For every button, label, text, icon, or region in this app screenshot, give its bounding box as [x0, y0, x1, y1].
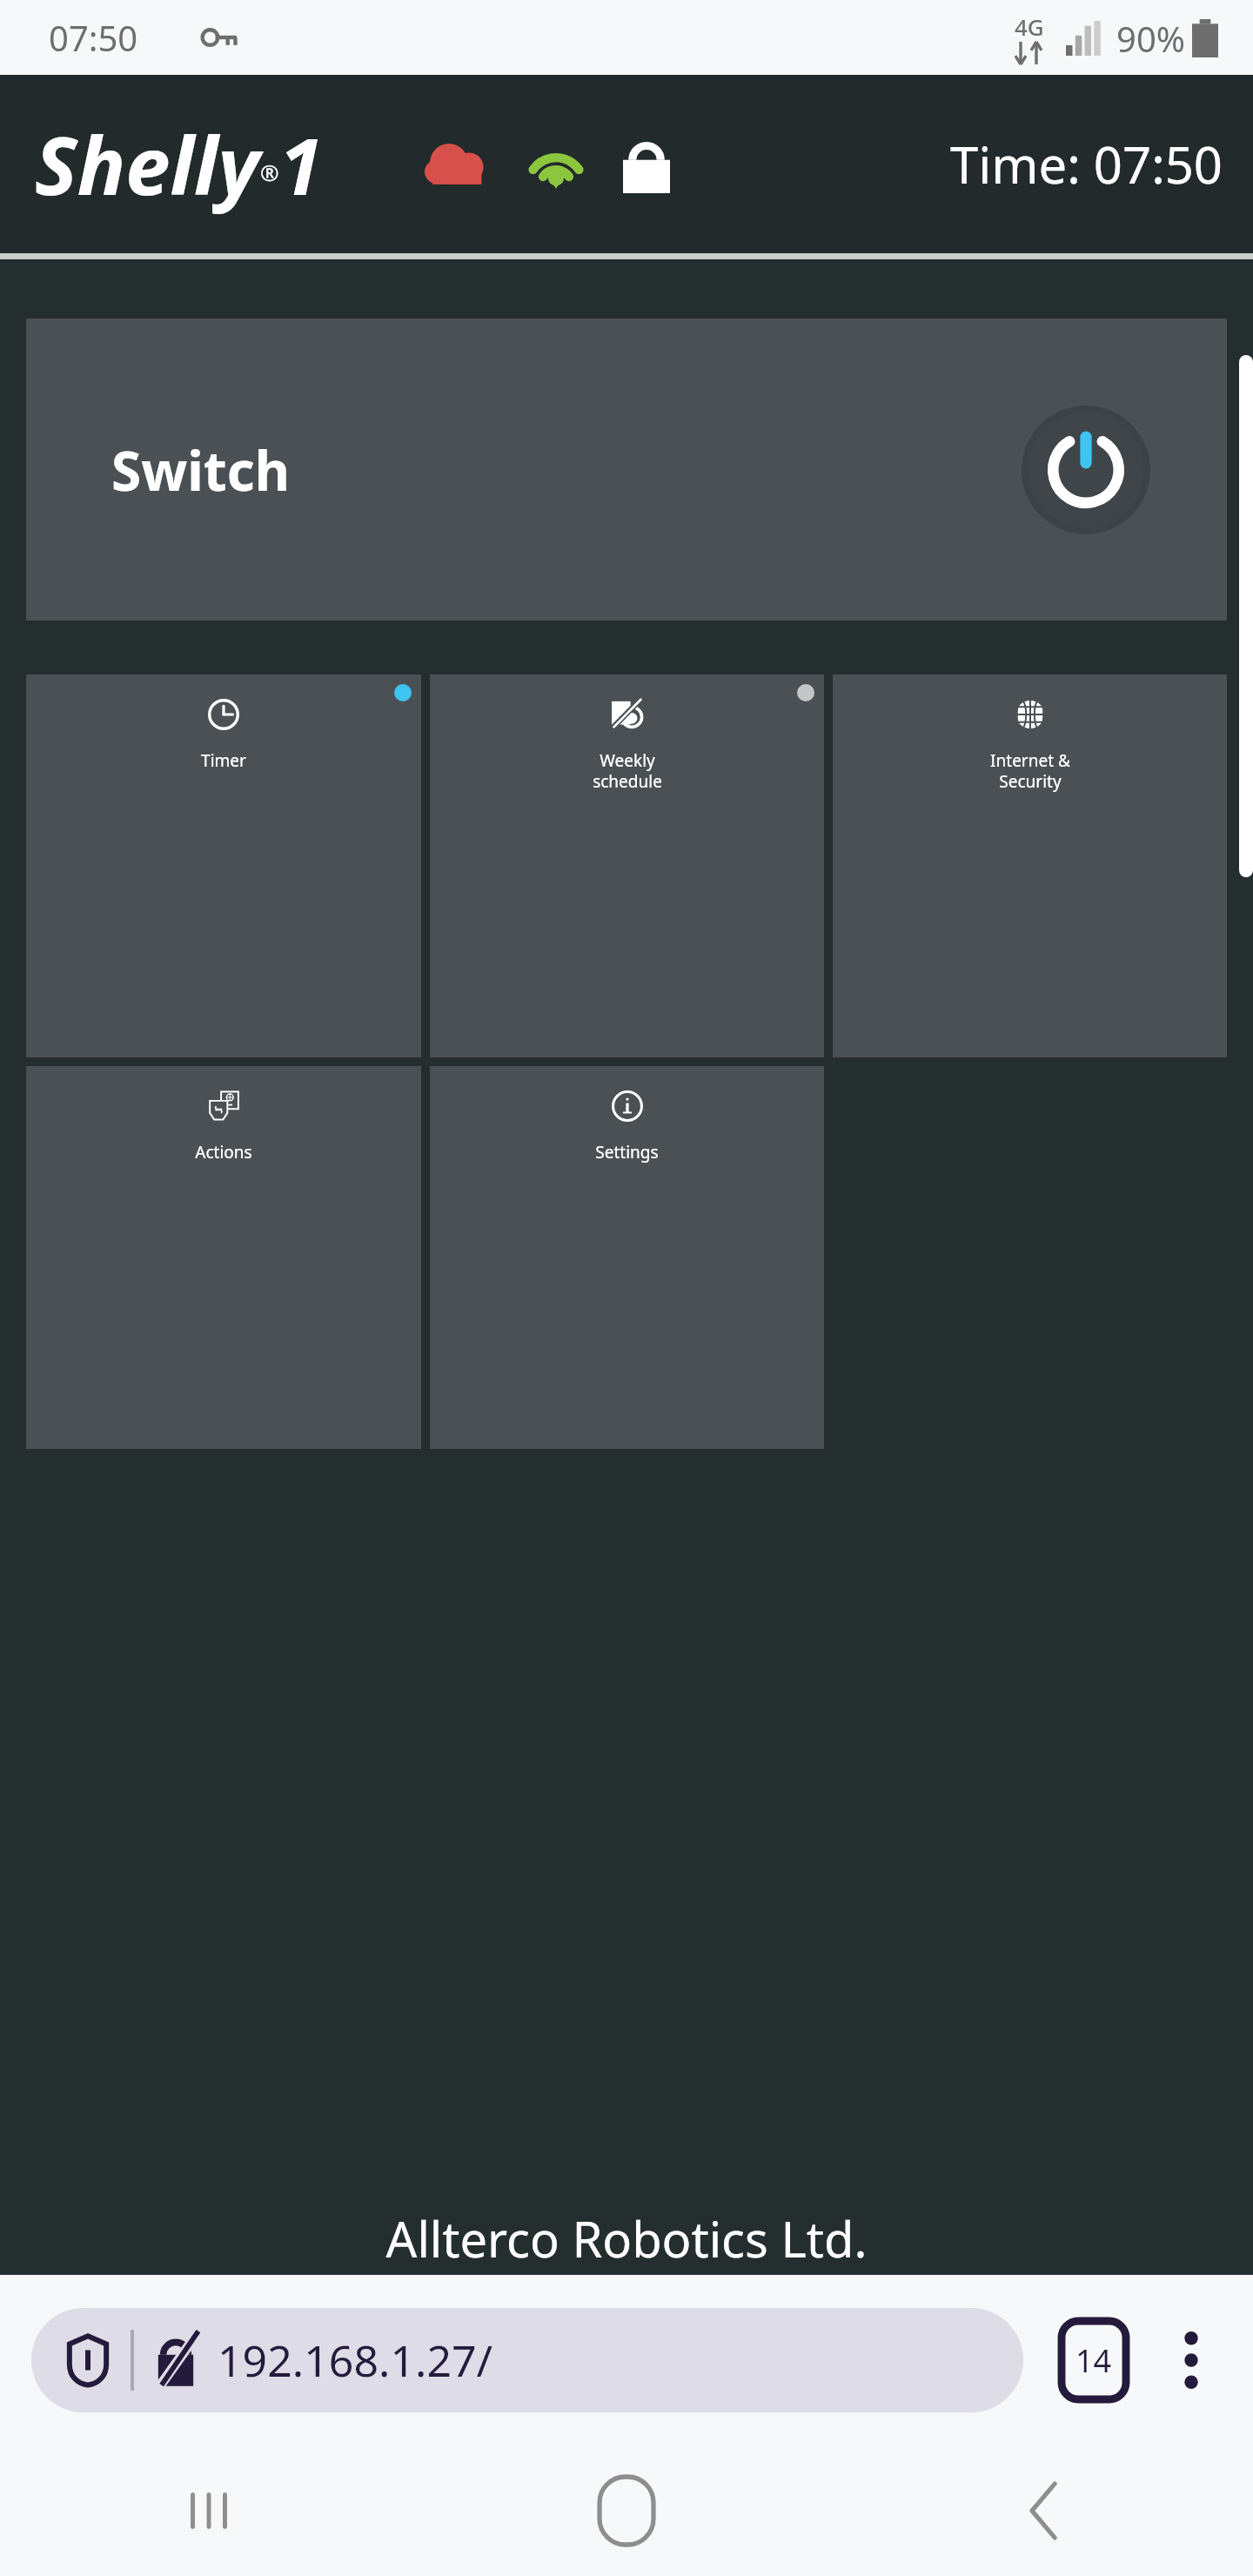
staticText: 4G [1015, 11, 1044, 42]
staticText: 192.168.1.27/ [218, 2331, 493, 2390]
staticText: Shelly [35, 110, 260, 218]
staticText: 14 [1075, 2339, 1112, 2382]
button[interactable]: Timer [26, 674, 421, 1057]
staticText: Weekly schedule [593, 749, 662, 792]
button[interactable]: Back [835, 2445, 1253, 2576]
staticText: Allterco Robotics Ltd. [0, 2205, 1253, 2271]
button[interactable]: Weekly schedule [430, 674, 824, 1057]
button[interactable]: Home [418, 2445, 835, 2576]
button[interactable]: Internet & Security [833, 674, 1227, 1057]
button[interactable]: Switch [26, 319, 1227, 621]
button[interactable]: Tabs [1062, 2321, 1126, 2399]
staticText: 1 [279, 111, 323, 218]
staticText: Internet & Security [990, 749, 1070, 792]
staticText: ® [260, 157, 279, 187]
staticText: Switch [111, 433, 290, 506]
staticText: Time: 07:50 [950, 130, 1223, 198]
button[interactable]: More options [1161, 2321, 1222, 2399]
staticText: Actions [195, 1141, 252, 1164]
button[interactable]: Recents [0, 2445, 418, 2576]
staticText: 07:50 [49, 14, 138, 61]
button[interactable]: Settings [430, 1066, 824, 1449]
button[interactable]: Actions [26, 1066, 421, 1449]
button[interactable]: Toggle switch [1022, 406, 1150, 534]
staticText: 90% [1116, 15, 1185, 62]
button[interactable]: 192.168.1.27/ [31, 2308, 1023, 2412]
staticText: Settings [595, 1141, 659, 1164]
staticText: Timer [201, 749, 246, 772]
